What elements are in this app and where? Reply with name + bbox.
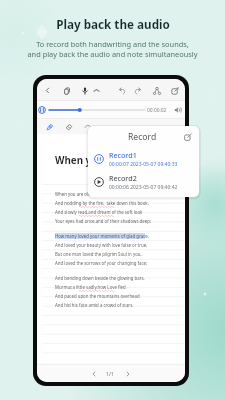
button[interactable]: Shapes	[81, 120, 94, 133]
staticText: When you are old	[55, 154, 140, 167]
staticText: Record1	[109, 150, 137, 160]
staticText: And hid his face amid a crowd of stars.	[55, 302, 134, 308]
staticText: And loved your beauty with love false or…	[55, 242, 148, 248]
button[interactable]: Pen	[43, 120, 56, 133]
staticText: When you are old and grey and full of sl…	[55, 191, 145, 197]
staticText: And nodding by the fire, take down this …	[55, 200, 149, 206]
staticText: Murmur,a little sadly,how Love fled	[55, 284, 126, 290]
staticText: And loved the sorrows of your changing f…	[55, 260, 148, 266]
staticText: And slowly read,and dream of the soft lo…	[55, 209, 143, 215]
staticText: 00:00:06 2023-05-07 09:40:42	[109, 184, 178, 191]
button[interactable]: Collapse	[91, 85, 102, 96]
button[interactable]: Record2	[88, 170, 199, 193]
staticText: To record both handwriting and the sound…	[36, 39, 189, 49]
staticText: How many loved your moments of glad grac…	[55, 233, 149, 239]
staticText: Your eyes had once,and of their shadows …	[55, 218, 152, 224]
staticText: Record2	[109, 173, 137, 183]
staticText: Record	[128, 131, 157, 143]
staticText: 00:00:07 2023-05-07 09:40:33	[109, 161, 178, 168]
button[interactable]: Pause	[37, 104, 48, 116]
staticText: Play back the audio	[56, 16, 170, 32]
staticText: And bending down beside the glowing bars…	[55, 275, 145, 281]
button[interactable]: Record audio	[78, 84, 91, 97]
button[interactable]: Export	[168, 84, 181, 97]
button[interactable]: Eraser	[62, 120, 75, 133]
button[interactable]: Record1	[88, 147, 199, 170]
staticText: 00:00:02	[147, 107, 167, 114]
staticText: and play back the audio and note simulta…	[27, 49, 198, 59]
staticText: 1/1	[106, 370, 115, 377]
button[interactable]: Edit	[182, 131, 193, 142]
button[interactable]: Next page	[121, 367, 134, 380]
button[interactable]: Undo	[115, 84, 128, 97]
button[interactable]: Share	[150, 84, 163, 97]
button[interactable]: Copy	[60, 84, 73, 97]
staticText: But one man loved the pilgrim Soul in yo…	[55, 251, 142, 257]
button[interactable]: Previous page	[87, 367, 100, 380]
button[interactable]: Redo	[131, 84, 144, 97]
button[interactable]: Volume	[172, 104, 184, 116]
staticText: And paced upon the mountains overhead	[55, 293, 140, 299]
button[interactable]: Back	[41, 84, 54, 97]
